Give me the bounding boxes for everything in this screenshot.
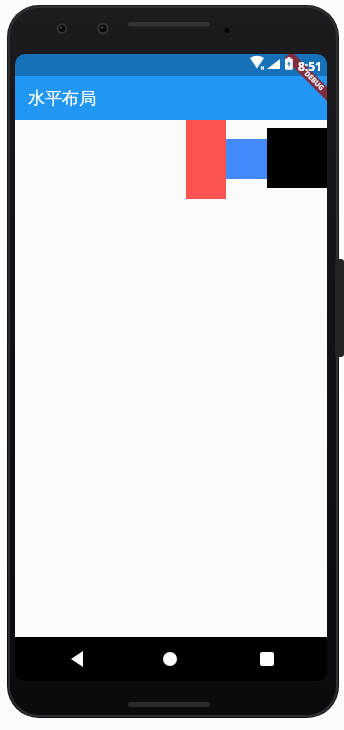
staticText: DEBUG [302, 69, 327, 94]
button[interactable] [63, 649, 91, 669]
staticText: 水平布局 [28, 88, 96, 109]
staticText: 8:51 [298, 58, 322, 74]
button[interactable] [253, 647, 280, 671]
button[interactable] [156, 646, 184, 672]
